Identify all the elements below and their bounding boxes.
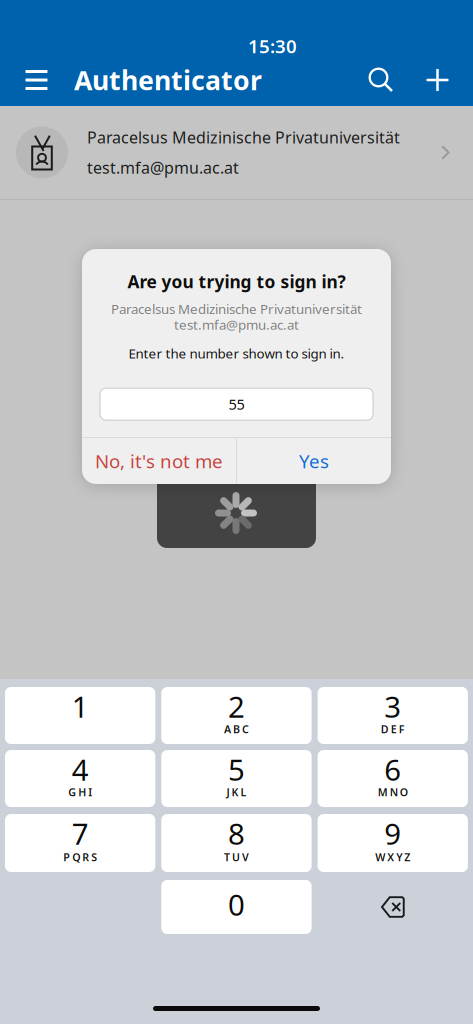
staticText: Are you trying to sign in? [127, 270, 345, 293]
staticText: Paracelsus Medizinische Privatuniversitä… [87, 127, 400, 148]
button[interactable]: 0 [161, 880, 312, 934]
staticText: test.mfa@pmu.ac.at [87, 157, 239, 178]
staticText: 7 [72, 814, 89, 853]
staticText: Paracelsus Medizinische Privatuniversitä… [111, 300, 362, 318]
staticText: 6 [384, 750, 401, 789]
staticText: Authenticator [74, 62, 262, 98]
staticText: test.mfa@pmu.ac.at [174, 316, 299, 333]
button[interactable]: 8 [161, 814, 312, 872]
staticText: 0 [228, 885, 245, 924]
staticText: TUV [224, 850, 249, 864]
staticText: Yes [299, 449, 329, 473]
button[interactable]: Paracelsus Medizinische Privatuniversitä… [0, 106, 473, 199]
staticText: No, it's not me [95, 449, 223, 473]
button[interactable]: 5 [161, 750, 312, 807]
staticText: JKL [226, 785, 246, 799]
staticText: MNO [378, 785, 408, 799]
staticText: PQRS [63, 850, 97, 864]
button[interactable]: 6 [318, 750, 468, 807]
staticText: 4 [72, 750, 89, 789]
button[interactable]: 2 [161, 687, 312, 744]
button[interactable]: 3 [318, 687, 468, 744]
staticText: Enter the number shown to sign in. [128, 344, 344, 362]
staticText: WXYZ [375, 850, 410, 864]
staticText: 55 [228, 394, 244, 414]
button[interactable]: No, it's not me [82, 438, 236, 484]
staticText: 15:30 [248, 34, 297, 58]
button[interactable]: 4 [5, 750, 155, 807]
button[interactable]: Search [350, 54, 412, 106]
staticText: 1 [72, 687, 89, 726]
button[interactable]: 9 [318, 814, 468, 872]
staticText: GHI [68, 785, 92, 799]
button[interactable]: 7 [5, 814, 155, 872]
button[interactable]: Yes [237, 438, 391, 484]
staticText: 8 [228, 814, 245, 853]
staticText: 5 [228, 750, 245, 789]
staticText: ABC [224, 722, 249, 736]
staticText: 2 [228, 687, 245, 726]
button[interactable]: 1 [5, 687, 155, 744]
button[interactable]: Delete [318, 880, 468, 934]
staticText: DEF [381, 722, 405, 736]
button[interactable]: Menu [14, 54, 59, 106]
button[interactable]: Authenticator [59, 54, 262, 106]
staticText: 9 [384, 814, 401, 853]
staticText: 3 [384, 687, 401, 726]
button[interactable]: Add account [412, 54, 463, 106]
